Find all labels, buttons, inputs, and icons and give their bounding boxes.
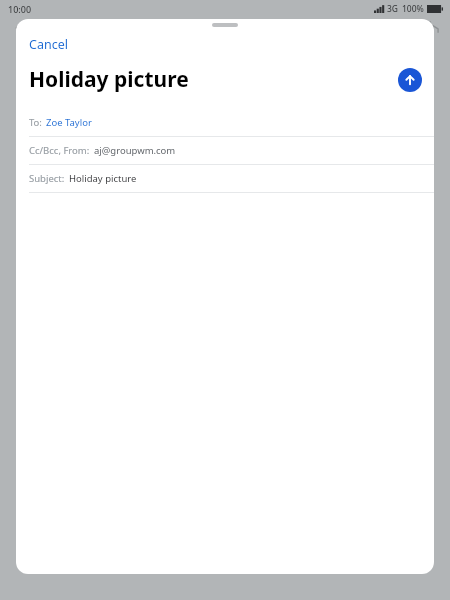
staticText: Zoe Taylor bbox=[46, 116, 92, 129]
staticText: Holiday picture bbox=[29, 65, 398, 94]
button[interactable]: Cancel bbox=[16, 35, 78, 56]
button[interactable]: To: bbox=[16, 109, 434, 136]
staticText: Cancel bbox=[29, 36, 68, 53]
staticText: Cc/Bcc, From: bbox=[29, 144, 90, 157]
staticText: 3G bbox=[387, 3, 399, 15]
staticText: 10:00 bbox=[8, 3, 32, 15]
staticText: To: bbox=[29, 116, 42, 129]
button[interactable]: Cc/Bcc, From: bbox=[16, 137, 434, 164]
staticText: 100% bbox=[402, 3, 424, 15]
button[interactable]: Send bbox=[398, 68, 422, 92]
button[interactable]: Subject: bbox=[16, 165, 434, 192]
staticText: Holiday picture bbox=[69, 172, 137, 185]
staticText: aj@groupwm.com bbox=[94, 144, 176, 157]
staticText: Subject: bbox=[29, 172, 65, 185]
